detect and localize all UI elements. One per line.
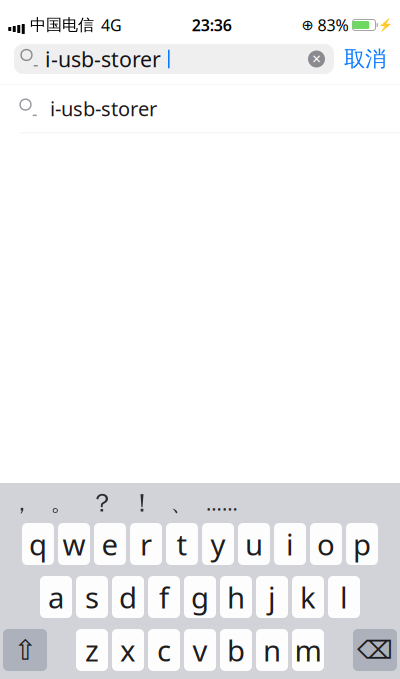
staticText: ？ [89, 487, 114, 518]
staticText: t [176, 524, 187, 563]
staticText: g [191, 577, 209, 616]
staticText: 83% [317, 14, 348, 36]
button[interactable]: e [94, 523, 126, 565]
button[interactable]: w [58, 523, 90, 565]
button[interactable]: f [148, 576, 180, 618]
staticText: w [62, 524, 85, 563]
button[interactable]: h [220, 576, 252, 618]
button[interactable]: d [112, 576, 144, 618]
staticText: m [294, 630, 321, 669]
staticText: y [210, 524, 225, 563]
button[interactable]: 取消 [344, 46, 386, 72]
button[interactable]: m [292, 629, 324, 671]
staticText: j [268, 577, 276, 616]
staticText: v [192, 630, 207, 669]
staticText: 。 [50, 489, 73, 517]
staticText: e [101, 524, 118, 563]
button[interactable]: y [202, 523, 234, 565]
button[interactable]: l [328, 576, 360, 618]
staticText: 中国电信 [30, 15, 94, 35]
button[interactable]: j [256, 576, 288, 618]
staticText: z [85, 630, 99, 669]
button[interactable]: Delete [353, 629, 397, 671]
button[interactable]: u [238, 523, 270, 565]
button[interactable]: i-usb-storer [0, 85, 400, 133]
staticText: ⌫ [357, 636, 393, 664]
button[interactable]: s [76, 576, 108, 618]
staticText: a [48, 577, 64, 616]
staticText: r [140, 524, 152, 563]
button[interactable]: k [292, 576, 324, 618]
staticText: o [317, 524, 335, 563]
button[interactable]: r [130, 523, 162, 565]
staticText: s [85, 577, 99, 616]
button[interactable]: t [166, 523, 198, 565]
staticText: b [227, 630, 245, 669]
staticText: q [29, 524, 47, 563]
staticText: ！ [129, 487, 154, 518]
button[interactable]: 。 [42, 485, 82, 521]
button[interactable]: x [112, 629, 144, 671]
staticText: x [120, 630, 136, 669]
staticText: f [159, 577, 169, 616]
staticText: i-usb-storer [50, 95, 157, 122]
button[interactable]: c [148, 629, 180, 671]
staticText: l [340, 577, 348, 616]
staticText: ⇧ [13, 634, 36, 666]
staticText: i-usb-storer [45, 45, 161, 73]
staticText: p [353, 524, 371, 563]
staticText: u [245, 524, 263, 563]
staticText: 4G [101, 14, 122, 36]
button[interactable]: a [40, 576, 72, 618]
button[interactable]: i [274, 523, 306, 565]
button[interactable]: 、 [162, 485, 202, 521]
button[interactable]: q [22, 523, 54, 565]
button[interactable]: v [184, 629, 216, 671]
button[interactable]: Shift [3, 629, 47, 671]
button[interactable]: ， [2, 485, 42, 521]
staticText: c [157, 630, 171, 669]
button[interactable]: …… [202, 485, 242, 521]
button[interactable]: b [220, 629, 252, 671]
staticText: n [263, 630, 281, 669]
staticText: ， [10, 489, 33, 517]
button[interactable]: ？ [82, 485, 122, 521]
button[interactable]: g [184, 576, 216, 618]
staticText: h [227, 577, 245, 616]
staticText: 23:36 [192, 14, 232, 36]
staticText: ⚡ [378, 18, 393, 32]
staticText: d [119, 577, 137, 616]
staticText: …… [206, 490, 238, 516]
button[interactable]: p [346, 523, 378, 565]
staticText: 、 [170, 489, 193, 517]
button[interactable]: o [310, 523, 342, 565]
button[interactable]: ！ [122, 485, 162, 521]
button[interactable]: i-usb-storer [14, 44, 334, 74]
staticText: k [300, 577, 316, 616]
staticText: ✕ [311, 52, 321, 66]
staticText: 取消 [344, 46, 386, 72]
staticText: ⊕ [301, 17, 313, 33]
button[interactable]: z [76, 629, 108, 671]
staticText: i [286, 524, 294, 563]
button[interactable]: n [256, 629, 288, 671]
